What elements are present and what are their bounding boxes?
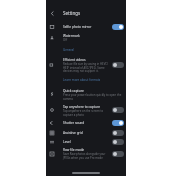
button[interactable]: Tap anywhere to capture (46, 102, 126, 118)
staticText: Level (63, 140, 71, 144)
button[interactable]: Efficient videos (46, 55, 126, 74)
staticText: Learn more about formats (63, 78, 126, 82)
staticText: Assistive grid (63, 131, 83, 135)
button[interactable]: Selfie photo mirror (46, 22, 126, 32)
staticText: Efficient videos (63, 58, 86, 62)
button[interactable]: Assistive grid (46, 128, 126, 137)
button[interactable]: Watermark (46, 32, 126, 44)
staticText: Quick capture (63, 89, 84, 93)
button[interactable]: Shutter sound (46, 118, 126, 128)
button[interactable]: Toggle (112, 62, 124, 68)
button[interactable]: Toggle (112, 139, 124, 145)
button[interactable]: Toggle (112, 107, 124, 113)
staticText: Raw file mode (63, 148, 85, 152)
staticText: General (63, 48, 75, 52)
button[interactable]: Raw file mode (46, 146, 126, 161)
button[interactable]: Toggle (112, 151, 124, 157)
staticText: Tap anywhere to capture (63, 105, 100, 109)
button[interactable]: Toggle (112, 120, 124, 126)
staticText: Tap anywhere on the screen to capture a … (63, 109, 110, 116)
button[interactable]: Back (49, 7, 63, 19)
button[interactable]: Level (46, 137, 126, 146)
button[interactable]: Toggle (112, 130, 124, 136)
staticText: Shutter sound (63, 121, 85, 125)
staticText: Reduce file size by saving in HEVC/HEIF … (63, 62, 110, 72)
staticText: Save Raw photos alongside your JPEGs whe… (63, 152, 110, 159)
staticText: Watermark (63, 34, 80, 38)
staticText: Press your power button quickly to open … (63, 93, 122, 100)
staticText: Off (63, 38, 68, 42)
staticText: Settings (63, 10, 81, 16)
button[interactable]: Learn more about formats (63, 74, 126, 86)
button[interactable]: Toggle (112, 24, 124, 30)
button[interactable]: Quick capture (46, 86, 126, 102)
staticText: Selfie photo mirror (63, 25, 92, 29)
